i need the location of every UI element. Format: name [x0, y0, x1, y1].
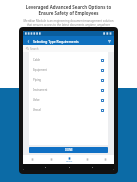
- button[interactable]: [23, 155, 42, 164]
- staticText: Vessel: [33, 108, 41, 112]
- button[interactable]: Equipment: [33, 65, 104, 75]
- button[interactable]: Back: [25, 36, 112, 45]
- staticText: Leveraged Advanced Search Options to: [12, 4, 125, 10]
- button[interactable]: Vessel: [33, 105, 104, 115]
- button[interactable]: Valve: [33, 95, 104, 105]
- button[interactable]: System navigation: [43, 165, 47, 169]
- button[interactable]: System navigation: [90, 165, 94, 169]
- staticText: that ensures access to the latest docume…: [12, 23, 125, 27]
- button[interactable]: Instrument: [33, 85, 104, 95]
- button[interactable]: Back: [25, 38, 31, 44]
- staticText: Ensure Safety of Employees: [12, 10, 125, 16]
- button[interactable]: Cable: [33, 55, 104, 65]
- button[interactable]: [42, 155, 60, 164]
- staticText: Valve: [33, 98, 40, 102]
- button[interactable]: Search: [26, 45, 111, 52]
- staticText: Meridian Module is an engineering docume…: [12, 19, 125, 23]
- staticText: Search: [30, 47, 39, 51]
- staticText: Equipment: [33, 68, 47, 72]
- button[interactable]: Piping: [33, 75, 104, 85]
- staticText: Selecting Type Requirements: [33, 39, 79, 43]
- button[interactable]: [78, 155, 96, 164]
- staticText: Cable: [33, 58, 41, 62]
- staticText: Instrument: [33, 88, 48, 92]
- button[interactable]: DONE: [29, 147, 108, 153]
- button[interactable]: Search: [60, 155, 78, 164]
- button[interactable]: System navigation: [67, 165, 71, 169]
- staticText: Search: [66, 160, 73, 163]
- button[interactable]: Filter: [106, 38, 112, 44]
- staticText: Piping: [33, 78, 41, 82]
- button[interactable]: [96, 155, 114, 164]
- staticText: DONE: [65, 148, 73, 152]
